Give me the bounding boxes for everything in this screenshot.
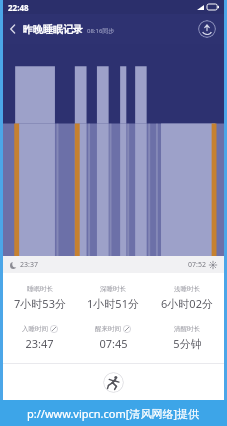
staticText: 6小时02分 xyxy=(161,296,213,311)
staticText: 清醒时长 xyxy=(174,325,200,333)
staticText: p://www.vipcn.com[清风网络]提供 xyxy=(27,406,200,421)
button[interactable]: Back xyxy=(3,19,23,39)
staticText: 07:45 xyxy=(99,336,128,351)
staticText: 22:48 xyxy=(8,2,29,13)
staticText: 1小时51分 xyxy=(87,296,139,311)
staticText: 醒来时间 xyxy=(95,325,121,333)
button[interactable]: 醒来时间 xyxy=(76,325,150,351)
button[interactable]: 深睡时长 xyxy=(76,285,150,311)
staticText: 07:52 xyxy=(188,260,206,270)
button[interactable]: 清醒时长 xyxy=(150,325,224,351)
staticText: 深睡时长 xyxy=(100,285,126,293)
staticText: 23:37 xyxy=(20,260,38,270)
staticText: 浅睡时长 xyxy=(174,285,200,293)
staticText: 23:47 xyxy=(25,336,54,351)
button[interactable]: 睡眠时长 xyxy=(3,285,76,311)
button[interactable]: 入睡时间 xyxy=(3,325,76,351)
staticText: 入睡时间 xyxy=(22,325,48,333)
button[interactable]: 浅睡时长 xyxy=(150,285,224,311)
staticText: 7小时53分 xyxy=(14,296,66,311)
staticText: 昨晚睡眠记录 xyxy=(23,23,83,36)
staticText: 5分钟 xyxy=(173,336,202,351)
button[interactable]: Activity xyxy=(103,372,124,393)
button[interactable]: Share xyxy=(198,20,216,38)
staticText: 08:16同步 xyxy=(87,27,115,35)
staticText: 睡眠时长 xyxy=(27,285,53,293)
